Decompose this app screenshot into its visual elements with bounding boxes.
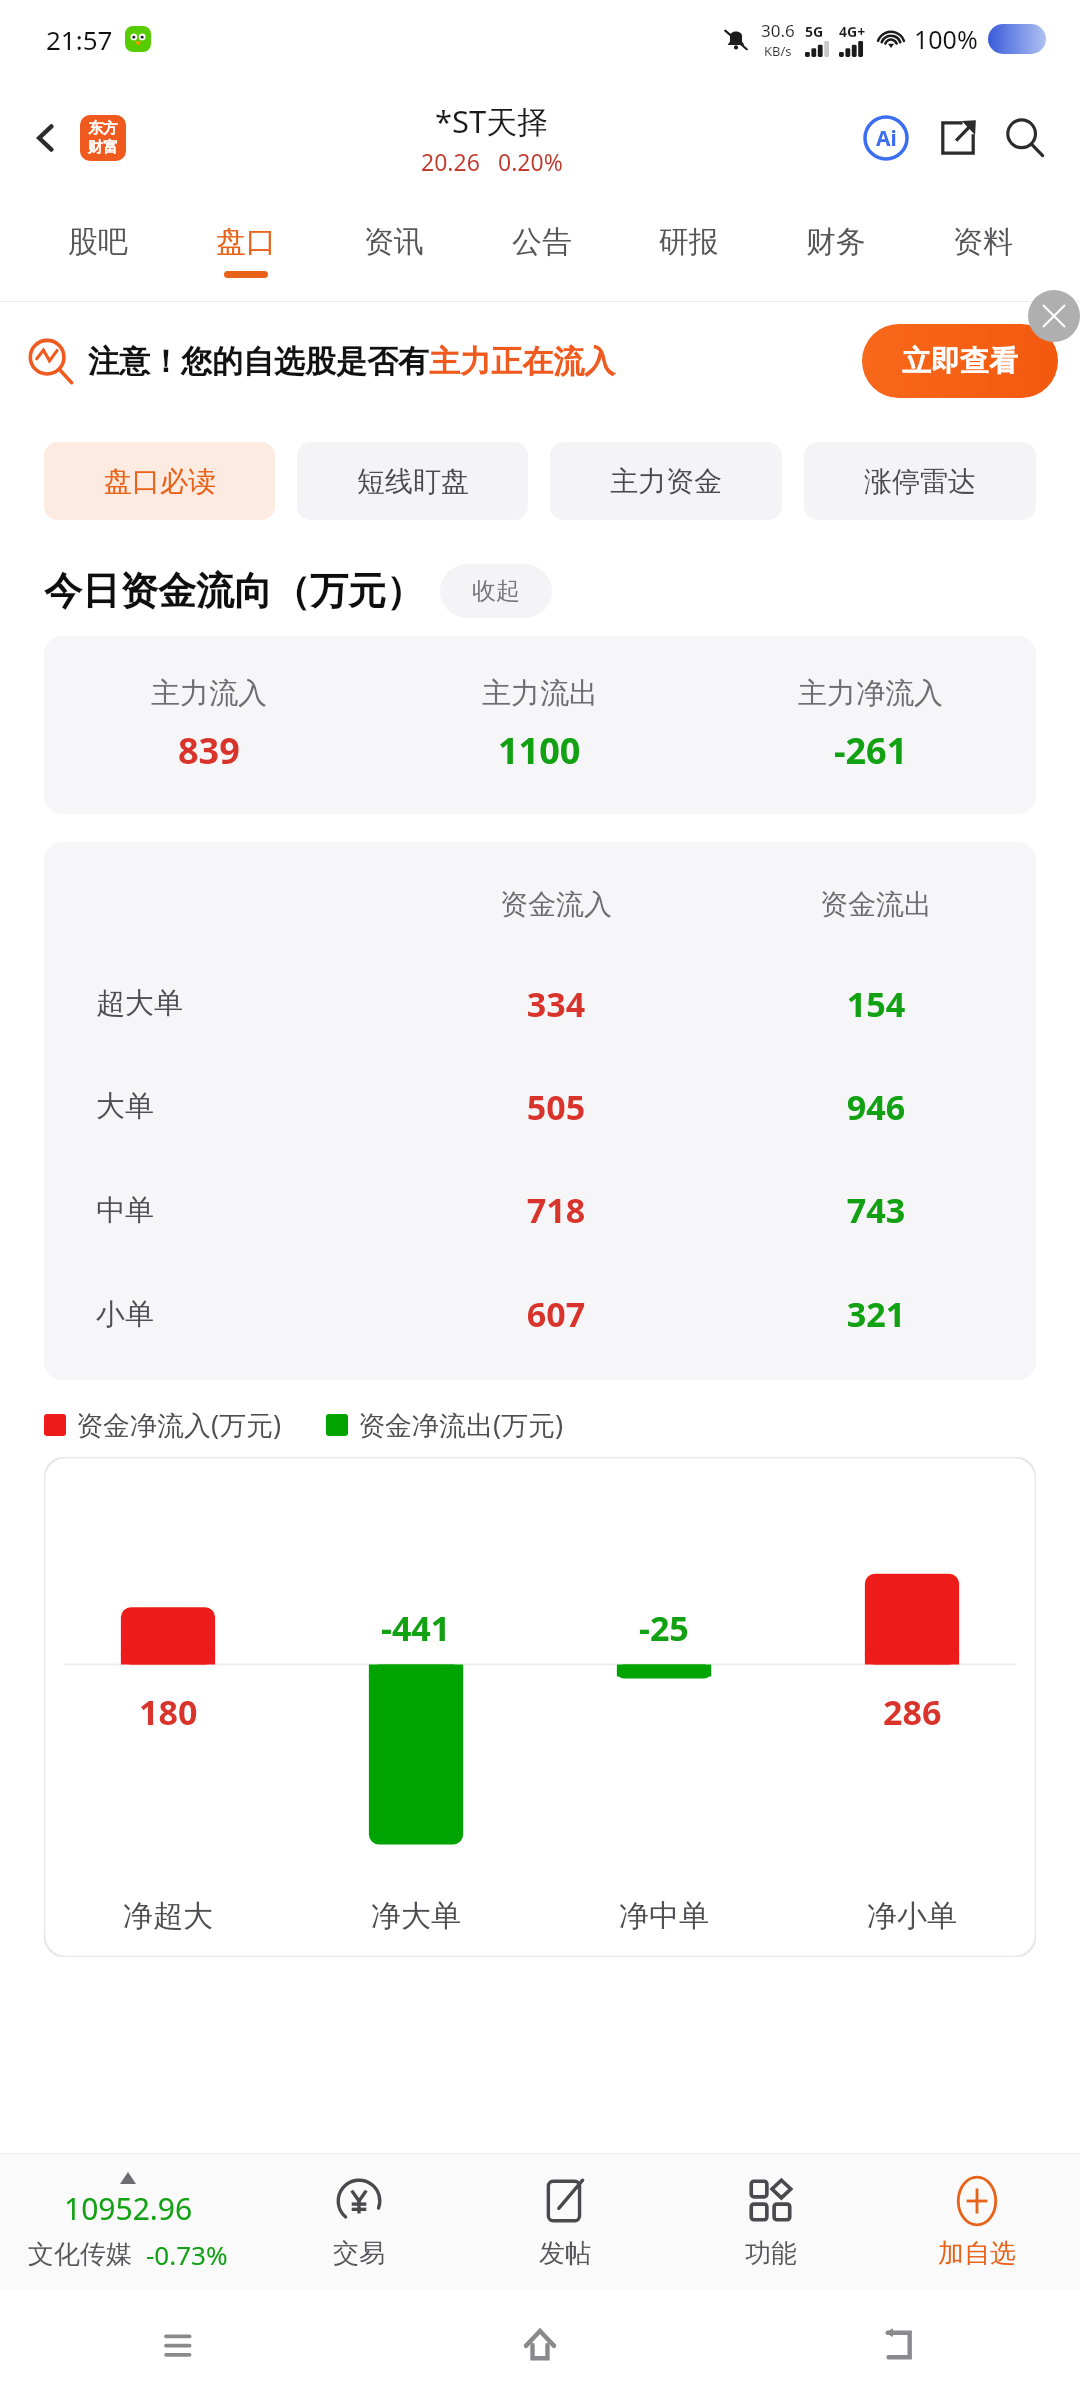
staticText: 321: [716, 1291, 1036, 1337]
staticText: 股吧: [68, 223, 128, 261]
staticText: 立即查看: [902, 343, 1018, 380]
staticText: 短线盯盘: [357, 464, 469, 499]
staticText: 净中单: [619, 1897, 709, 1935]
button[interactable]: 盘口必读: [44, 442, 275, 520]
staticText: 607: [396, 1291, 716, 1337]
staticText: Ai: [876, 124, 897, 153]
staticText: 10952.96: [64, 2188, 193, 2229]
staticText: 研报: [659, 223, 719, 261]
button[interactable]: 立即查看: [862, 324, 1058, 398]
staticText: 21:57: [46, 22, 113, 57]
button[interactable]: 公告: [468, 198, 615, 302]
staticText: 涨停雷达: [864, 464, 976, 499]
staticText: 154: [716, 981, 1036, 1027]
staticText: 资金流入: [396, 887, 716, 922]
staticText: 主力资金: [610, 464, 722, 499]
button[interactable]: 收起: [440, 564, 552, 618]
staticText: 4G+: [839, 22, 866, 41]
staticText: 公告: [512, 223, 572, 261]
staticText: 20.26: [421, 146, 480, 177]
staticText: 净小单: [867, 1897, 957, 1935]
staticText: 财务: [806, 223, 866, 261]
staticText: 文化传媒: [28, 2238, 132, 2271]
button[interactable]: 资料: [909, 198, 1056, 302]
button[interactable]: 功能: [668, 2154, 874, 2290]
button[interactable]: Close banner: [1028, 290, 1080, 342]
button[interactable]: 股吧: [24, 198, 172, 302]
button[interactable]: 小单: [44, 1262, 1036, 1366]
staticText: 功能: [745, 2237, 797, 2270]
staticText: -25: [639, 1605, 689, 1651]
staticText: 收起: [472, 576, 520, 606]
button[interactable]: 交易: [256, 2154, 462, 2290]
staticText: 946: [716, 1084, 1036, 1130]
button[interactable]: Share: [932, 112, 984, 164]
staticText: *ST天择: [435, 100, 549, 142]
staticText: -0.73%: [146, 2237, 228, 2272]
button[interactable]: 加自选: [874, 2154, 1080, 2290]
staticText: 718: [396, 1187, 716, 1233]
staticText: 盘口必读: [104, 464, 216, 499]
button[interactable]: Recent apps: [0, 2290, 360, 2400]
button[interactable]: 资讯: [320, 198, 468, 302]
staticText: 资料: [953, 223, 1013, 261]
button[interactable]: 涨停雷达: [804, 442, 1036, 520]
staticText: 180: [139, 1689, 198, 1735]
button[interactable]: Home: [360, 2290, 720, 2400]
staticText: 100%: [914, 22, 978, 56]
button[interactable]: 研报: [615, 198, 762, 302]
button[interactable]: AI assistant: [858, 110, 914, 166]
staticText: 净大单: [371, 1897, 461, 1935]
staticText: 主力流入: [151, 675, 267, 712]
staticText: 主力净流入: [798, 675, 943, 712]
staticText: 334: [396, 981, 716, 1027]
staticText: 超大单: [96, 985, 183, 1022]
staticText: 资金净流入(万元): [76, 1406, 282, 1443]
staticText: 注意！您的自选股是否有: [88, 342, 429, 381]
staticText: 资金净流出(万元): [358, 1406, 564, 1443]
button[interactable]: 财务: [762, 198, 909, 302]
staticText: 资讯: [364, 223, 424, 261]
staticText: 东方: [88, 119, 118, 138]
button[interactable]: 中单: [44, 1158, 1036, 1262]
button[interactable]: 主力资金: [550, 442, 782, 520]
button[interactable]: 10952.96: [0, 2154, 256, 2290]
button[interactable]: Search: [998, 111, 1052, 165]
staticText: 大单: [96, 1088, 154, 1125]
staticText: 盘口: [216, 223, 276, 261]
staticText: 286: [883, 1689, 942, 1735]
button[interactable]: 短线盯盘: [297, 442, 528, 520]
staticText: 中单: [96, 1192, 154, 1229]
staticText: -261: [834, 726, 908, 775]
staticText: 加自选: [938, 2237, 1016, 2270]
staticText: 839: [178, 726, 240, 775]
button[interactable]: 超大单: [44, 952, 1036, 1055]
button[interactable]: East Money home: [80, 115, 126, 161]
staticText: 30.6: [761, 19, 795, 42]
staticText: 505: [396, 1084, 716, 1130]
staticText: 743: [716, 1187, 1036, 1233]
button[interactable]: 发帖: [462, 2154, 668, 2290]
button[interactable]: Back: [720, 2290, 1080, 2400]
staticText: 1100: [498, 726, 581, 775]
staticText: 净超大: [123, 1897, 213, 1935]
staticText: 财富: [88, 138, 118, 157]
staticText: 0.20%: [498, 146, 563, 177]
staticText: 交易: [333, 2237, 385, 2270]
staticText: 今日资金流向（万元）: [44, 567, 424, 615]
button[interactable]: Back: [18, 110, 74, 166]
staticText: 资金流出: [716, 887, 1036, 922]
staticText: 发帖: [539, 2237, 591, 2270]
staticText: 主力正在流入: [429, 342, 615, 381]
button[interactable]: 大单: [44, 1055, 1036, 1158]
staticText: 小单: [96, 1296, 154, 1333]
staticText: -441: [381, 1605, 451, 1651]
staticText: KB/s: [764, 42, 792, 60]
button[interactable]: 盘口: [172, 198, 320, 302]
button[interactable]: 主力流入: [44, 636, 1036, 814]
staticText: 5G: [805, 22, 824, 41]
staticText: 主力流出: [482, 675, 598, 712]
